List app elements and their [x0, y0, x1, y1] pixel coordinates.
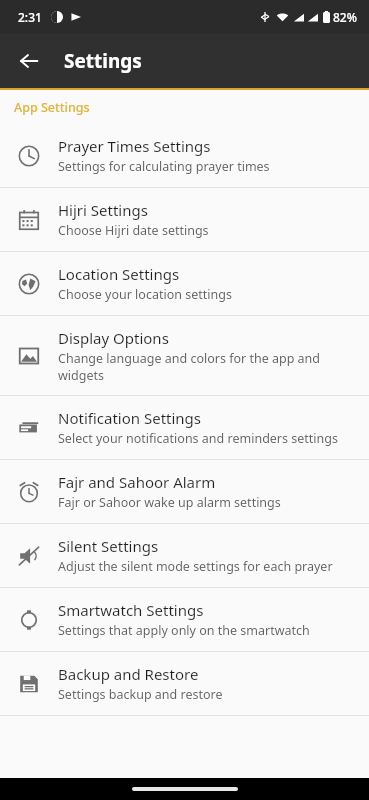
staticText: Fajr or Sahoor wake up alarm settings	[58, 494, 281, 511]
button[interactable]: Smartwatch Settings	[0, 588, 369, 651]
staticText: Choose your location settings	[58, 286, 232, 303]
staticText: Choose Hijri date settings	[58, 222, 209, 239]
button[interactable]: Back	[10, 42, 48, 80]
staticText: Settings that apply only on the smartwat…	[58, 622, 310, 639]
staticText: Hijri Settings	[58, 200, 148, 220]
button[interactable]: Display Options	[0, 316, 369, 395]
staticText: Change language and colors for the app a…	[58, 350, 353, 383]
button[interactable]: Notification Settings	[0, 396, 369, 459]
button[interactable]: Prayer Times Settings	[0, 124, 369, 187]
staticText: Silent Settings	[58, 536, 159, 556]
staticText: 2:31	[18, 9, 42, 25]
staticText: App Settings	[14, 99, 90, 116]
staticText: Settings	[64, 48, 142, 74]
button[interactable]: Hijri Settings	[0, 188, 369, 251]
staticText: Fajr and Sahoor Alarm	[58, 472, 216, 492]
staticText: Backup and Restore	[58, 664, 199, 684]
staticText: Select your notifications and reminders …	[58, 430, 338, 447]
staticText: Location Settings	[58, 264, 180, 284]
staticText: 82%	[333, 9, 357, 25]
button[interactable]: Location Settings	[0, 252, 369, 315]
staticText: Settings for calculating prayer times	[58, 158, 270, 175]
button[interactable]: Silent Settings	[0, 524, 369, 587]
staticText: Display Options	[58, 328, 169, 348]
staticText: Smartwatch Settings	[58, 600, 204, 620]
button[interactable]: Backup and Restore	[0, 652, 369, 715]
button[interactable]: Fajr and Sahoor Alarm	[0, 460, 369, 523]
staticText: Adjust the silent mode settings for each…	[58, 558, 333, 575]
staticText: Prayer Times Settings	[58, 136, 211, 156]
staticText: Settings backup and restore	[58, 686, 223, 703]
staticText: Notification Settings	[58, 408, 202, 428]
